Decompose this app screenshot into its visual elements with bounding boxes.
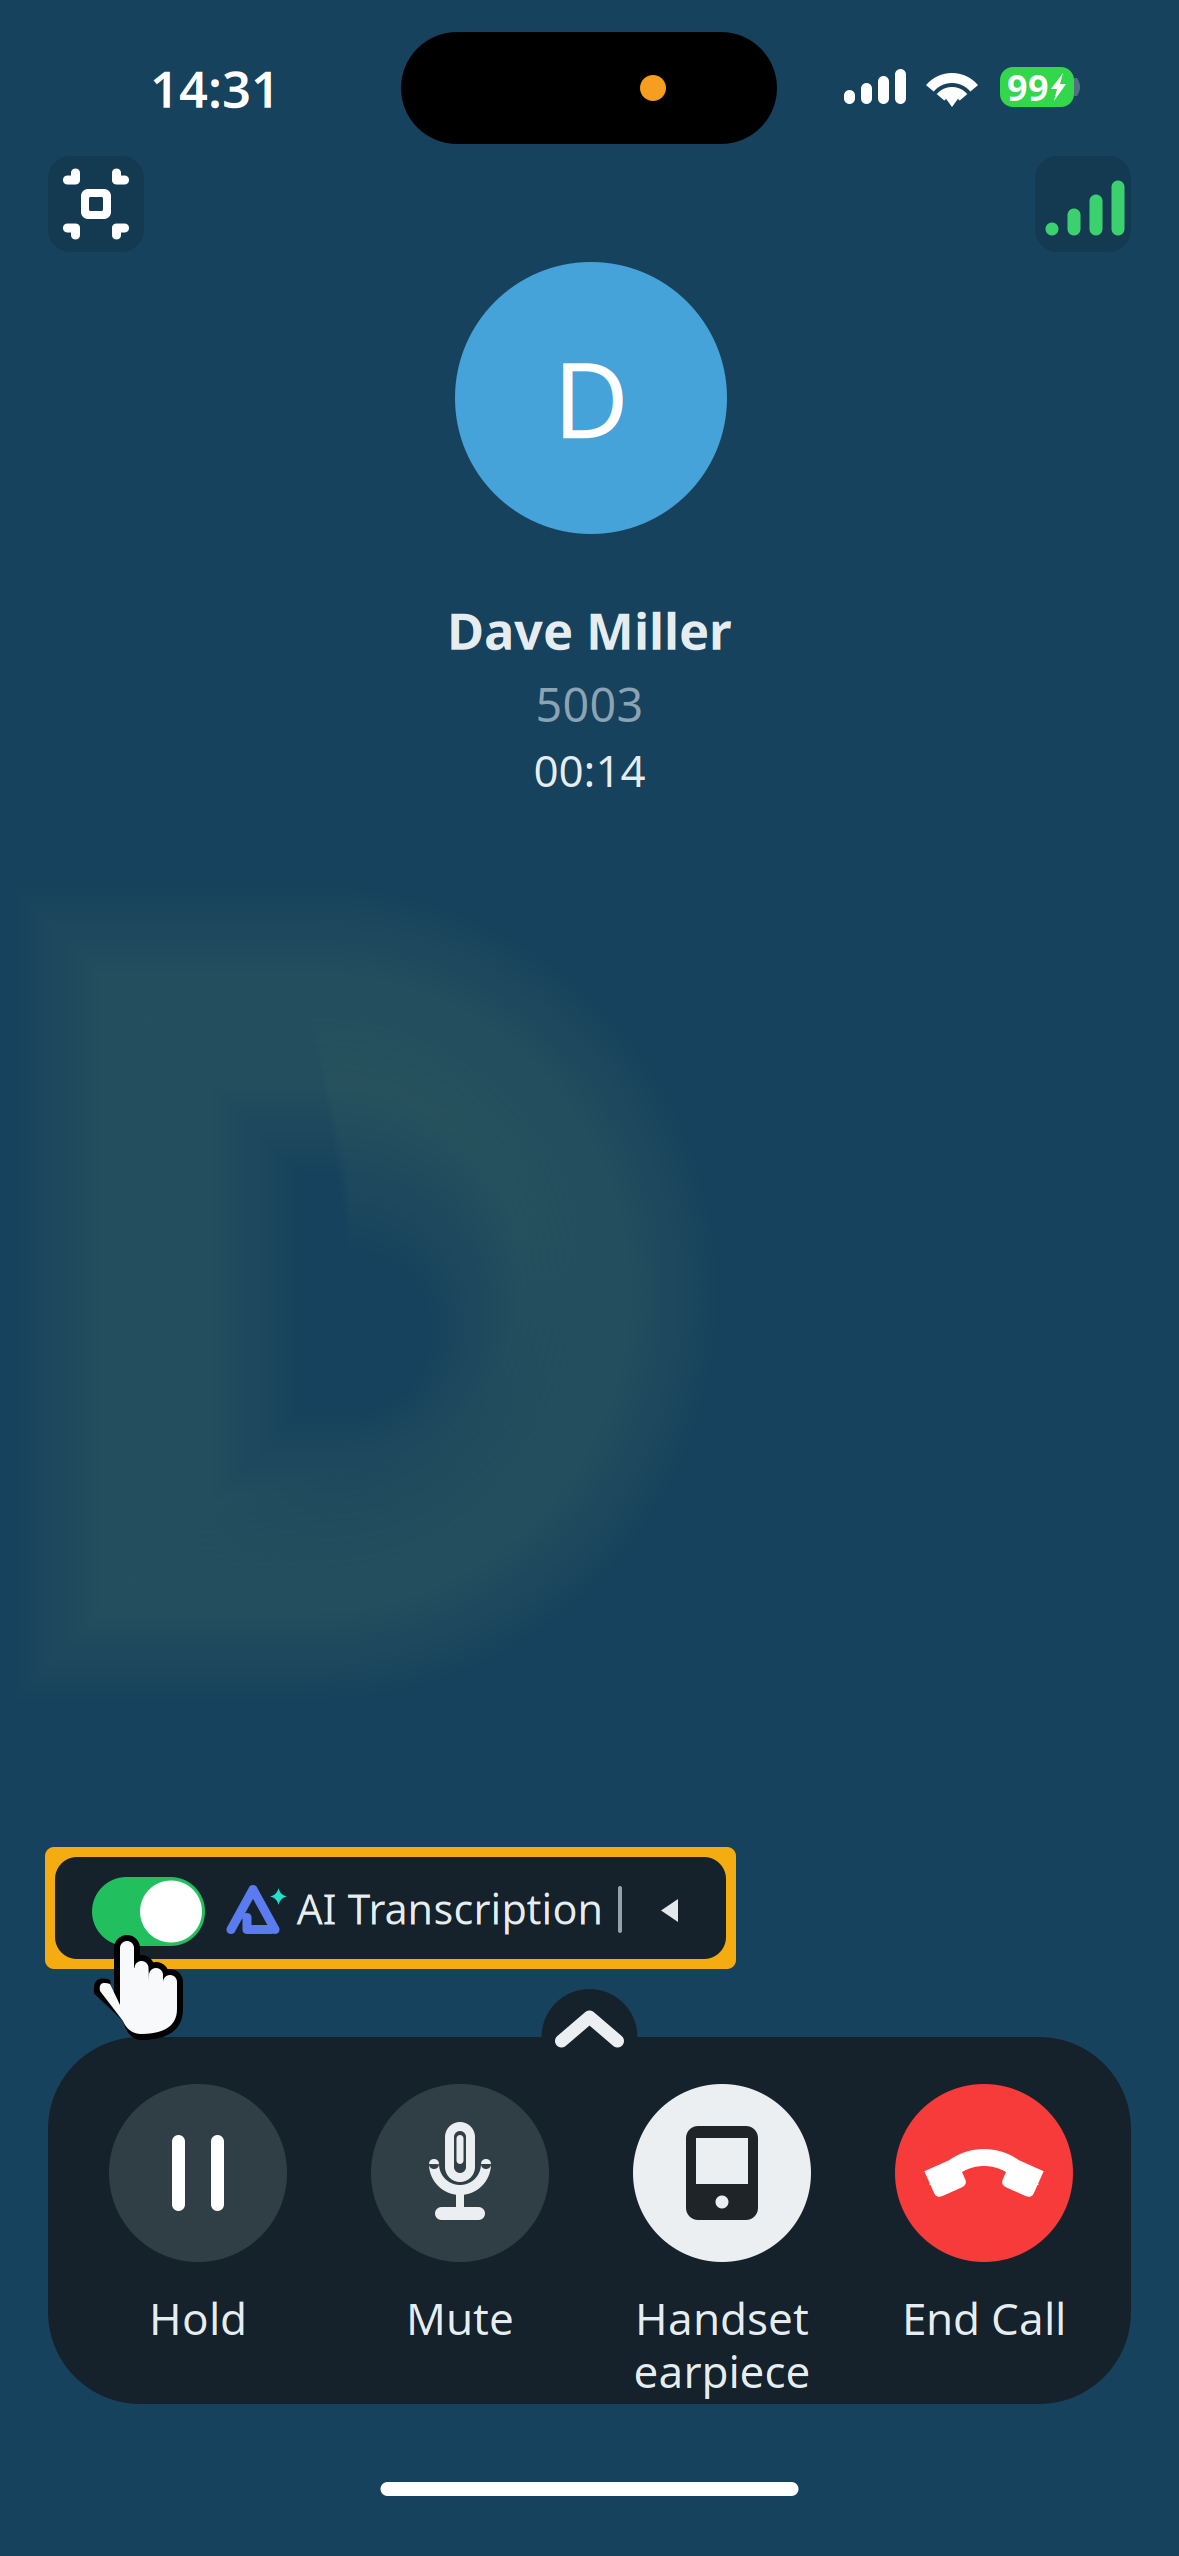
button[interactable]: Call quality	[1035, 156, 1131, 252]
staticText: 00:14	[533, 741, 645, 799]
button[interactable]: Handset earpiece	[591, 2084, 853, 2384]
button[interactable]: End Call	[853, 2084, 1115, 2384]
staticText: earpiece	[633, 2342, 810, 2400]
staticText: Dave Miller	[447, 596, 732, 664]
button[interactable]: AI Transcription	[45, 1847, 736, 1969]
button[interactable]: Hold	[67, 2084, 329, 2384]
button[interactable]: Mute	[329, 2084, 591, 2384]
staticText: AI Transcription	[296, 1881, 603, 1936]
staticText: Hold	[149, 2289, 247, 2347]
staticText: 5003	[535, 673, 643, 735]
staticText: 99	[1007, 63, 1049, 111]
button[interactable]: Minimize call	[48, 156, 144, 252]
staticText: Handset	[635, 2289, 809, 2347]
button[interactable]: Show more options	[553, 2009, 625, 2049]
staticText: D	[553, 329, 629, 467]
staticText: Mute	[406, 2289, 514, 2347]
staticText: End Call	[902, 2289, 1066, 2347]
staticText: 14:31	[150, 54, 280, 122]
